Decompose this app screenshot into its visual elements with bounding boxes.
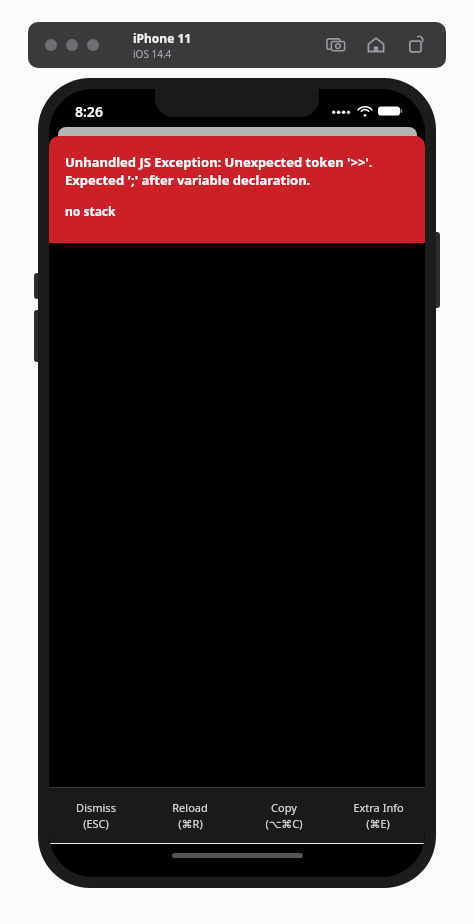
button[interactable]: Extra Info	[331, 788, 425, 843]
staticText: (⌥⌘C)	[265, 816, 303, 831]
staticText: no stack	[65, 203, 116, 219]
button[interactable]: Unhandled JS Exception: Unexpected token…	[49, 136, 425, 243]
staticText: Unhandled JS Exception: Unexpected token…	[65, 153, 411, 189]
button[interactable]	[66, 39, 78, 51]
staticText: (⌘R)	[178, 816, 203, 831]
staticText: Extra Info	[353, 800, 404, 815]
button[interactable]: Home	[364, 33, 388, 57]
button[interactable]: Reload	[143, 788, 237, 843]
button[interactable]: Copy	[237, 788, 331, 843]
staticText: Copy	[271, 800, 297, 815]
staticText: (⌘E)	[366, 816, 390, 831]
button[interactable]: Screenshot	[324, 33, 348, 57]
staticText: 8:26	[75, 102, 103, 121]
staticText: Dismiss	[76, 800, 116, 815]
button[interactable]: Dismiss	[49, 788, 143, 843]
staticText: (ESC)	[83, 816, 109, 831]
staticText: iOS 14.4	[133, 47, 172, 61]
staticText: iPhone 11	[133, 30, 192, 46]
staticText: Reload	[172, 800, 208, 815]
button[interactable]: Rotate	[404, 33, 428, 57]
button[interactable]	[87, 39, 99, 51]
button[interactable]	[45, 39, 57, 51]
